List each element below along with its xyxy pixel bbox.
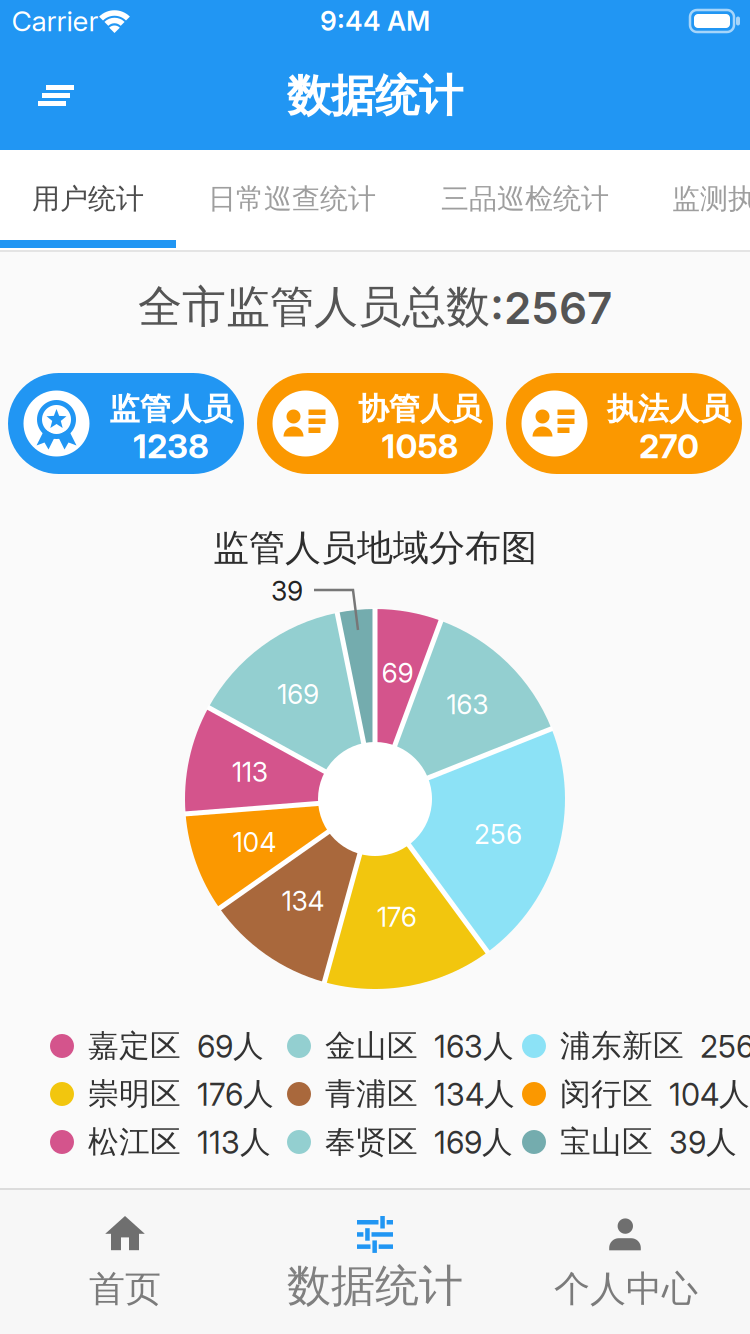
button[interactable]: 监测执法统计 (640, 150, 750, 248)
staticText: 256 (474, 818, 522, 850)
staticText: 数据统计 (287, 69, 463, 123)
staticText: 日常巡查统计 (208, 182, 376, 216)
staticText: 三品巡检统计 (441, 182, 609, 216)
staticText: 1058 (381, 426, 458, 466)
staticText: 执法人员 (607, 390, 731, 428)
staticText: 宝山区 39人 (560, 1123, 737, 1161)
staticText: 104 (233, 827, 277, 858)
button[interactable]: 首页 (0, 1188, 250, 1334)
staticText: 监管人员 (109, 390, 233, 428)
staticText: 169 (277, 679, 319, 710)
staticText: Carrier (11, 4, 98, 37)
button[interactable]: 执法人员 (506, 373, 742, 474)
staticText: 163 (446, 689, 488, 720)
button[interactable]: 监管人员 (8, 373, 244, 474)
button[interactable]: 个人中心 (500, 1188, 750, 1334)
staticText: 134 (281, 885, 324, 917)
staticText: 全市监管人员总数:2567 (138, 280, 612, 334)
staticText: 176 (377, 901, 417, 933)
staticText: 1238 (133, 426, 209, 466)
staticText: 监管人员地域分布图 (213, 526, 537, 570)
staticText: 9:44 AM (320, 5, 430, 37)
staticText: 青浦区 134人 (325, 1075, 515, 1113)
staticText: 浦东新区 256人 (560, 1027, 750, 1065)
staticText: 113 (232, 756, 268, 788)
staticText: 监测执法统计 (672, 182, 750, 216)
button[interactable]: 三品巡检统计 (409, 150, 641, 248)
button[interactable]: 协管人员 (257, 373, 493, 474)
staticText: 金山区 163人 (325, 1027, 514, 1065)
button[interactable]: 用户统计 (0, 150, 176, 248)
staticText: 松江区 113人 (88, 1123, 271, 1161)
staticText: 首页 (89, 1267, 161, 1311)
button[interactable]: Menu (16, 65, 96, 125)
staticText: 闵行区 104人 (560, 1075, 750, 1113)
button[interactable]: 日常巡查统计 (176, 150, 408, 248)
staticText: 崇明区 176人 (88, 1075, 274, 1113)
staticText: 69 (382, 657, 414, 689)
button[interactable]: 数据统计 (250, 1188, 500, 1334)
staticText: 个人中心 (554, 1267, 698, 1311)
staticText: 奉贤区 169人 (325, 1123, 513, 1161)
staticText: 协管人员 (358, 390, 482, 428)
staticText: 嘉定区 69人 (88, 1027, 264, 1065)
staticText: 数据统计 (287, 1259, 463, 1313)
staticText: 39 (271, 575, 303, 607)
staticText: 270 (639, 426, 699, 466)
staticText: 用户统计 (32, 182, 144, 216)
